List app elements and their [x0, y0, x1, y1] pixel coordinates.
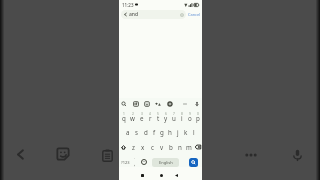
button[interactable]: 6 — [162, 111, 170, 123]
button[interactable]: 1 — [119, 111, 128, 123]
button[interactable]: f — [150, 126, 158, 138]
staticText: f — [153, 128, 156, 136]
button[interactable]: More options — [240, 144, 262, 166]
staticText: z — [132, 143, 135, 151]
staticText: 1 — [123, 112, 125, 116]
staticText: t — [157, 114, 160, 122]
staticText: r — [149, 114, 152, 122]
staticText: 7 — [173, 112, 175, 116]
button[interactable]: Back — [171, 170, 181, 180]
staticText: 6 — [165, 112, 167, 116]
staticText: 9 — [189, 112, 191, 116]
button[interactable]: h — [166, 126, 174, 138]
button[interactable]: Cancel — [187, 9, 201, 20]
button[interactable]: 2 — [128, 111, 137, 123]
button[interactable]: Back — [9, 143, 31, 165]
staticText: 5 — [157, 112, 159, 116]
button[interactable]: Backspace — [193, 141, 202, 153]
button[interactable]: Themes — [180, 99, 190, 109]
button[interactable]: Clipboard — [96, 144, 118, 166]
button[interactable]: 8 — [178, 111, 186, 123]
button[interactable]: Stickers — [52, 143, 74, 165]
staticText: 0 — [197, 112, 199, 116]
button[interactable]: Translate — [153, 99, 163, 109]
staticText: p — [196, 114, 200, 122]
button[interactable]: Comma — [131, 156, 139, 168]
staticText: j — [177, 128, 179, 136]
staticText: d — [144, 128, 148, 136]
staticText: · — [134, 156, 136, 161]
button[interactable]: Settings — [165, 99, 175, 109]
button[interactable]: 5 — [154, 111, 162, 123]
staticText: u — [172, 114, 176, 122]
button[interactable]: k — [182, 126, 190, 138]
button[interactable]: s — [132, 126, 141, 138]
button[interactable]: n — [175, 141, 184, 153]
staticText: v — [160, 143, 164, 151]
button[interactable]: Search — [189, 158, 198, 167]
button[interactable]: v — [157, 141, 166, 153]
button[interactable]: Emoji — [140, 156, 148, 168]
button[interactable]: j — [174, 126, 182, 138]
staticText: 4 — [149, 112, 151, 116]
staticText: x — [141, 143, 145, 151]
staticText: i — [181, 114, 183, 122]
button[interactable]: x — [138, 141, 148, 153]
button[interactable]: z — [128, 141, 138, 153]
button[interactable]: English — [152, 158, 179, 167]
button[interactable]: 7 — [170, 111, 178, 123]
staticText: c — [151, 143, 154, 151]
button[interactable]: and — [121, 10, 186, 19]
staticText: b — [169, 143, 173, 151]
button[interactable]: l — [190, 126, 198, 138]
staticText: e — [140, 114, 144, 122]
button[interactable]: GIF — [131, 99, 141, 109]
button[interactable]: 9 — [186, 111, 194, 123]
staticText: g — [160, 128, 164, 136]
button[interactable]: Sticker — [142, 99, 152, 109]
staticText: o — [188, 114, 192, 122]
staticText: English — [159, 160, 173, 165]
staticText: Cancel — [188, 12, 201, 17]
staticText: l — [193, 128, 195, 136]
staticText: n — [178, 143, 182, 151]
staticText: 2 — [132, 112, 134, 116]
button[interactable]: Voice typing — [192, 99, 202, 109]
button[interactable]: d — [141, 126, 150, 138]
staticText: a — [126, 128, 130, 136]
button[interactable]: g — [158, 126, 166, 138]
button[interactable]: Home — [156, 170, 166, 180]
staticText: ?123 — [121, 160, 130, 165]
staticText: q — [122, 114, 126, 122]
button[interactable]: Search — [119, 99, 129, 109]
button[interactable]: m — [184, 141, 193, 153]
button[interactable]: Recents — [137, 170, 147, 180]
button[interactable]: Shift — [119, 141, 128, 153]
staticText: h — [168, 128, 172, 136]
staticText: m — [186, 143, 192, 151]
staticText: k — [184, 128, 188, 136]
staticText: 3 — [141, 112, 143, 116]
button[interactable]: ?123 — [120, 156, 130, 168]
button[interactable]: 4 — [146, 111, 154, 123]
button[interactable]: Voice input — [286, 144, 308, 166]
staticText: and — [129, 11, 139, 18]
staticText: s — [135, 128, 138, 136]
staticText: y — [164, 114, 168, 122]
staticText: 11:23 — [122, 2, 134, 8]
button[interactable]: 3 — [137, 111, 146, 123]
button[interactable]: 0 — [194, 111, 202, 123]
staticText: , — [134, 161, 136, 168]
staticText: 8 — [181, 112, 183, 116]
button[interactable]: b — [166, 141, 175, 153]
button[interactable]: a — [123, 126, 132, 138]
button[interactable]: c — [148, 141, 157, 153]
staticText: w — [130, 114, 135, 122]
